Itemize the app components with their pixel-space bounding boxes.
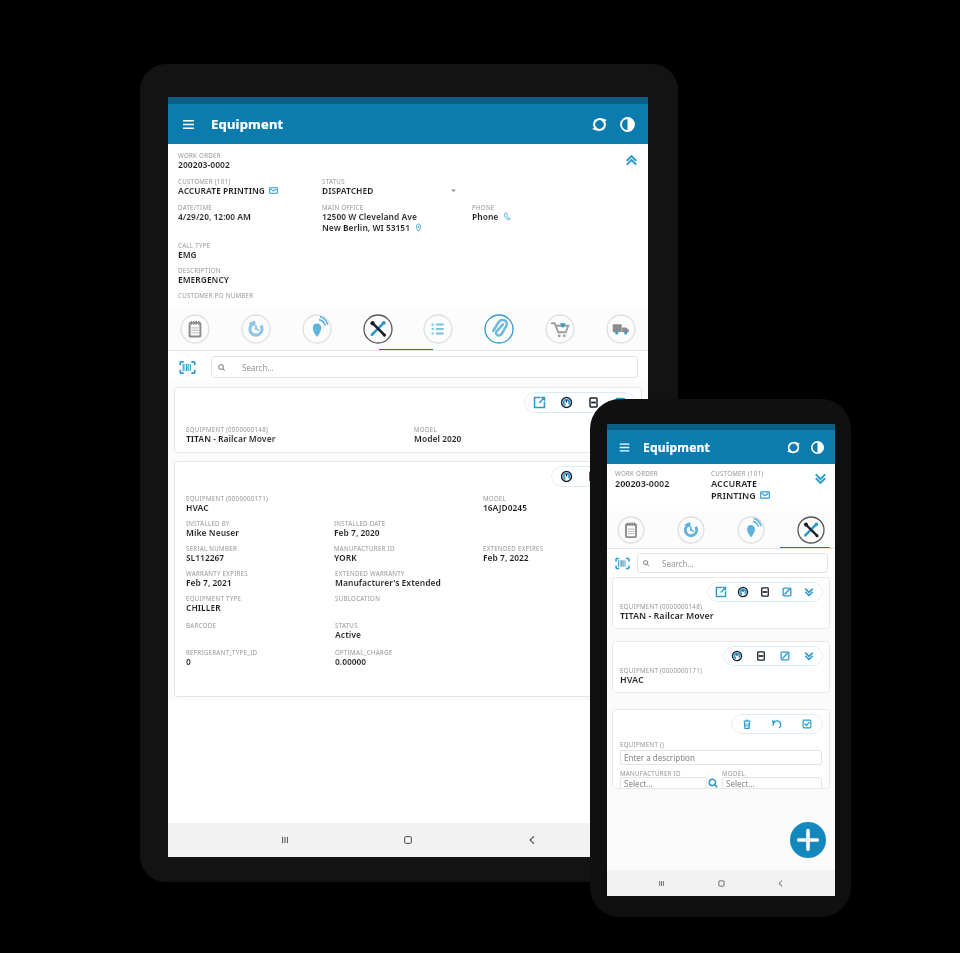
staticText: PRINTING [711,489,756,501]
staticText: EQUIPMENT () [620,740,665,748]
button[interactable]: History [612,641,830,693]
button[interactable]: Notes [617,516,645,544]
button[interactable]: Email [269,186,278,195]
staticText: WORK ORDER [178,151,221,159]
staticText: EQUIPMENT TYPE [186,594,242,602]
button[interactable]: Attachments [484,314,514,344]
button[interactable]: Add equipment [790,822,826,858]
staticText: Search... [662,558,694,569]
staticText: 12500 W Cleveland Ave [322,211,418,222]
button[interactable]: History [560,396,573,409]
button[interactable]: Collapse [625,154,638,167]
staticText: Equipment [643,439,710,455]
button[interactable]: Search manufacturer [707,777,719,789]
button[interactable]: Equipment [797,516,825,544]
button[interactable]: Home [716,878,727,889]
button[interactable]: Equipment [363,314,393,344]
staticText: 200203-0002 [615,477,670,489]
button[interactable]: Time [677,516,705,544]
staticText: OPTIMAL_CHARGE [335,648,393,656]
button[interactable]: Edit [614,396,627,409]
button[interactable]: History [737,586,749,598]
button[interactable]: Home [401,833,415,847]
button[interactable]: Parts [545,314,575,344]
button[interactable]: Document [587,470,600,483]
button[interactable]: Document [587,396,600,409]
button[interactable]: Dispatch [606,314,636,344]
button[interactable]: Recents [656,878,667,889]
staticText: Select... [726,778,755,789]
button[interactable]: Tasks [423,314,453,344]
button[interactable]: Edit [614,470,627,483]
button[interactable]: Open [533,396,546,409]
button[interactable]: Delete [741,718,753,730]
staticText: TITAN - Railcar Mover [620,610,714,622]
button[interactable]: Theme [810,440,825,455]
button[interactable]: Notes [180,314,210,344]
button[interactable]: Call [503,212,512,221]
button[interactable]: Email [760,490,770,500]
staticText: DESCRIPTION [178,266,221,274]
button[interactable]: Scan barcode [614,555,631,572]
staticText: 4/29/20, 12:00 AM [178,211,251,222]
button[interactable]: Refresh [591,116,608,133]
button[interactable]: Open [715,586,727,598]
staticText: MANUFACTURER ID [334,544,395,552]
staticText: SUBLOCATION [335,594,381,602]
button[interactable]: History [560,470,573,483]
staticText: EXTENDED WARRANTY [335,569,405,577]
button[interactable]: Select... [620,777,707,789]
button[interactable]: Open [612,577,830,629]
button[interactable]: Open [174,387,642,453]
button[interactable]: Edit [779,650,791,662]
button[interactable]: Select... [722,777,822,789]
staticText: MODEL [414,425,437,433]
button[interactable]: Back [525,833,539,847]
staticText: Mike Neuser [186,527,240,538]
staticText: DISPATCHED [322,185,374,196]
staticText: YORK [334,552,357,563]
staticText: Model 2020 [414,433,462,444]
button[interactable]: Scan barcode [178,358,197,377]
staticText: Equipment [211,115,284,133]
button[interactable]: Time [241,314,271,344]
button[interactable]: Expand [814,472,827,485]
button[interactable]: Select status [449,186,458,195]
staticText: Phone [472,211,499,222]
staticText: ACCURATE PRINTING [178,185,265,196]
button[interactable]: Enter a description [620,750,822,765]
button[interactable]: Document [755,650,767,662]
staticText: CUSTOMER PO NUMBER [178,291,254,299]
button[interactable]: Save [801,718,813,730]
button[interactable]: Expand [803,586,815,598]
staticText: EQUIPMENT (0000000148) [186,425,269,433]
staticText: PHONE [472,203,495,211]
button[interactable]: Menu [617,440,632,455]
staticText: EQUIPMENT (0000000171) [620,666,703,674]
button[interactable]: Theme [619,116,636,133]
staticText: Feb 7, 2022 [483,552,529,563]
button[interactable]: History [174,461,642,697]
button[interactable]: Refresh [786,440,801,455]
staticText: MAIN OFFICE [322,203,364,211]
button[interactable]: Location [737,516,765,544]
staticText: EQUIPMENT (0000000171) [186,494,269,502]
button[interactable]: Expand [803,650,815,662]
staticText: Manufacturer's Extended [335,577,441,588]
button[interactable]: Map [414,223,423,232]
button[interactable]: Search... [637,553,828,573]
button[interactable]: Back [775,878,786,889]
button[interactable]: History [731,650,743,662]
button[interactable]: Edit [781,586,793,598]
button[interactable]: Document [759,586,771,598]
staticText: Enter a description [624,752,695,763]
staticText: INSTALLED BY [186,519,230,527]
button[interactable]: Undo [771,718,783,730]
button[interactable]: Search... [211,356,638,378]
button[interactable]: Location [302,314,332,344]
staticText: 16AJD0245 [483,502,527,513]
button[interactable]: Delete [612,709,830,789]
staticText: New Berlin, WI 53151 [322,222,410,233]
button[interactable]: Menu [180,116,197,133]
button[interactable]: Recents [278,833,292,847]
